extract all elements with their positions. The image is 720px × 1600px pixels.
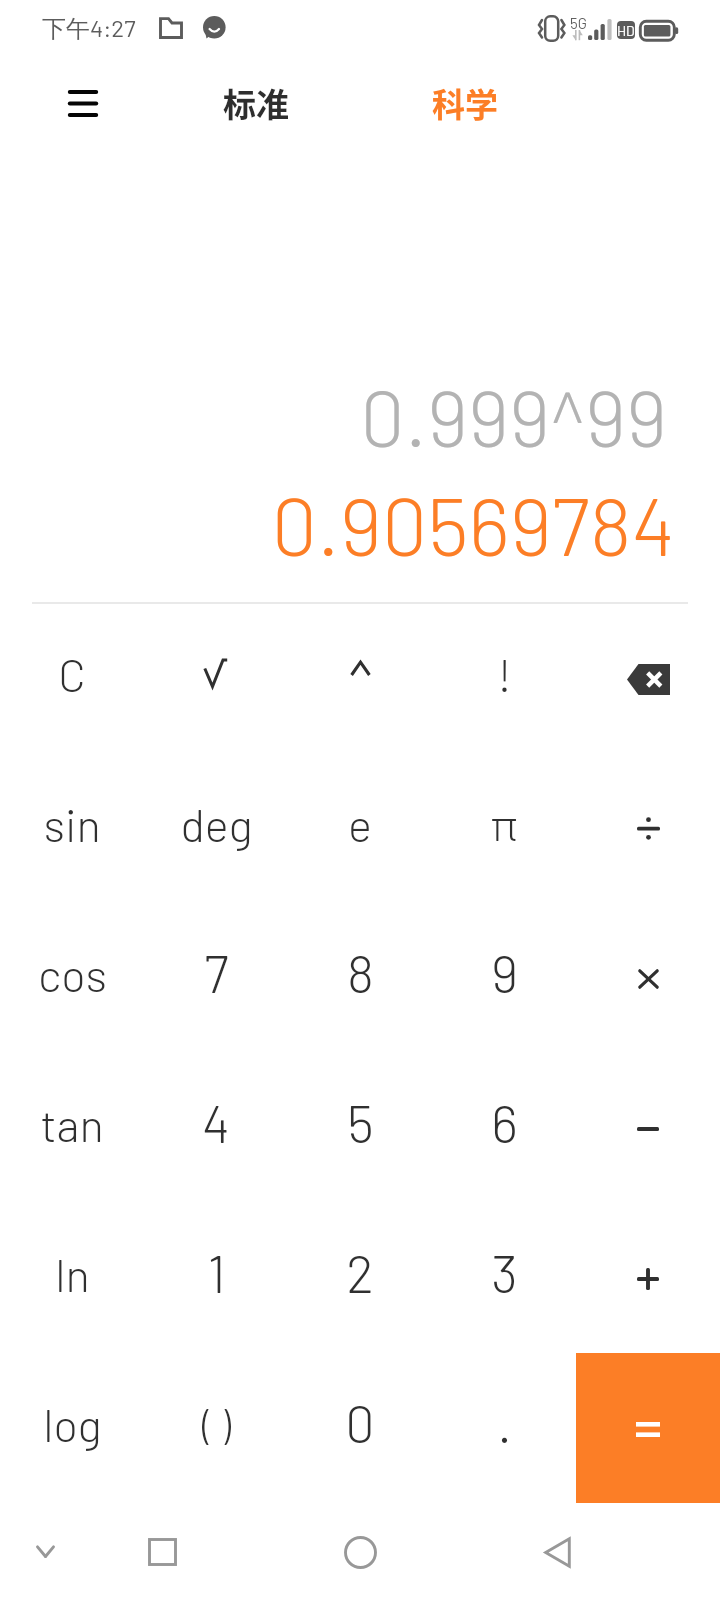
staticText: 标准 bbox=[223, 79, 289, 127]
staticText: 4 bbox=[202, 1091, 230, 1153]
staticText: HD bbox=[617, 22, 635, 39]
staticText: tan bbox=[40, 1097, 104, 1151]
button[interactable]: 4 bbox=[144, 1053, 288, 1203]
staticText: 3 bbox=[491, 1241, 518, 1303]
staticText: C bbox=[58, 647, 86, 701]
staticText: 1 bbox=[207, 1241, 226, 1303]
button[interactable]: Equals bbox=[576, 1353, 720, 1503]
button[interactable]: 8 bbox=[288, 903, 432, 1053]
button[interactable]: 1 bbox=[144, 1203, 288, 1353]
staticText: sin bbox=[43, 797, 101, 851]
button[interactable]: . bbox=[432, 1353, 576, 1503]
staticText: 6 bbox=[491, 1091, 518, 1153]
button[interactable]: Power bbox=[288, 603, 432, 753]
button[interactable]: 7 bbox=[144, 903, 288, 1053]
staticText: ! bbox=[497, 647, 512, 701]
button[interactable]: Divide bbox=[576, 753, 720, 903]
staticText: ln bbox=[55, 1247, 90, 1301]
button[interactable]: 6 bbox=[432, 1053, 576, 1203]
staticText: 0.90569784 bbox=[271, 475, 675, 572]
button[interactable]: ! bbox=[432, 603, 576, 753]
staticText: e bbox=[348, 797, 372, 851]
staticText: log bbox=[43, 1397, 102, 1451]
staticText: 科学 bbox=[432, 79, 498, 127]
button[interactable]: ln bbox=[0, 1203, 144, 1353]
staticText: 下午4:27 bbox=[42, 13, 136, 44]
button[interactable]: 科学 bbox=[419, 75, 511, 131]
staticText: ( ) bbox=[202, 1399, 231, 1449]
staticText: 0.999^99 bbox=[360, 368, 667, 463]
button[interactable]: cos bbox=[0, 903, 144, 1053]
button[interactable]: Delete bbox=[576, 603, 720, 753]
button[interactable]: 3 bbox=[432, 1203, 576, 1353]
staticText: 8 bbox=[347, 941, 374, 1003]
staticText: cos bbox=[38, 947, 107, 1001]
button[interactable]: Square root bbox=[144, 603, 288, 753]
staticText: deg bbox=[180, 797, 253, 851]
staticText: 5 bbox=[347, 1091, 374, 1153]
button[interactable]: 9 bbox=[432, 903, 576, 1053]
staticText: 7 bbox=[204, 941, 229, 1003]
button[interactable]: Multiply bbox=[576, 903, 720, 1053]
staticText: 0 bbox=[345, 1391, 375, 1453]
button[interactable]: C bbox=[0, 603, 144, 753]
button[interactable]: Menu bbox=[53, 73, 113, 133]
button[interactable]: Hide keyboard bbox=[7, 1514, 83, 1590]
button[interactable]: e bbox=[288, 753, 432, 903]
button[interactable]: Plus bbox=[576, 1203, 720, 1353]
button[interactable]: 0 bbox=[288, 1353, 432, 1503]
staticText: 2 bbox=[346, 1241, 374, 1303]
staticText: π bbox=[490, 798, 518, 850]
button[interactable]: Back bbox=[519, 1514, 595, 1590]
button[interactable]: sin bbox=[0, 753, 144, 903]
staticText: 5G bbox=[570, 14, 587, 32]
button[interactable]: log bbox=[0, 1353, 144, 1503]
button[interactable]: π bbox=[432, 753, 576, 903]
button[interactable]: Home bbox=[322, 1514, 398, 1590]
button[interactable]: deg bbox=[144, 753, 288, 903]
button[interactable]: ( ) bbox=[144, 1353, 288, 1503]
button[interactable]: tan bbox=[0, 1053, 144, 1203]
button[interactable]: 标准 bbox=[210, 75, 302, 131]
staticText: . bbox=[497, 1391, 512, 1453]
staticText: 9 bbox=[491, 941, 518, 1003]
button[interactable]: Minus bbox=[576, 1053, 720, 1203]
button[interactable]: 2 bbox=[288, 1203, 432, 1353]
button[interactable]: Recents bbox=[124, 1514, 200, 1590]
button[interactable]: 5 bbox=[288, 1053, 432, 1203]
